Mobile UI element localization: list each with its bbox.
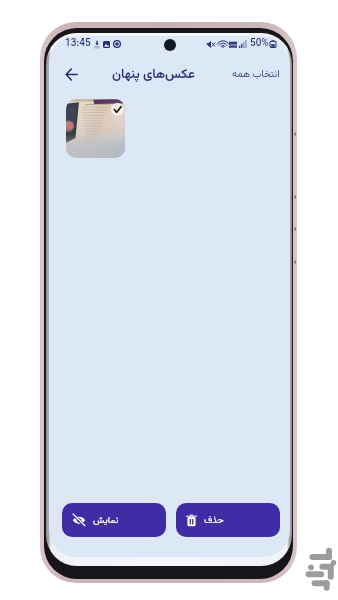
button[interactable]: Selected	[66, 99, 125, 158]
button[interactable]: نمایش	[62, 503, 166, 537]
staticText: عکس‌های پنهان	[112, 65, 195, 85]
other: Selected	[111, 103, 124, 116]
staticText: انتخاب همه	[232, 67, 280, 83]
staticText: نمایش	[93, 513, 119, 528]
button[interactable]: Back	[57, 60, 85, 88]
staticText: 13:45	[65, 36, 91, 52]
staticText: حذف	[204, 513, 224, 528]
staticText: 50%	[250, 36, 269, 52]
button[interactable]: حذف	[176, 503, 280, 537]
button[interactable]: انتخاب همه	[230, 64, 282, 86]
